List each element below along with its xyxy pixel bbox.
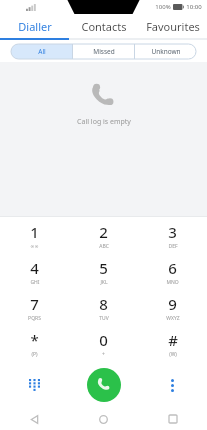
button[interactable]: Missed [73,44,134,59]
staticText: PQRS [28,315,41,322]
staticText: 0 [99,330,108,350]
button[interactable]: Keypad [0,362,69,408]
button[interactable]: 9 [138,290,207,326]
staticText: TUV [99,315,109,322]
staticText: Unknown [151,47,181,56]
staticText: 2 [99,222,108,242]
button[interactable]: Call [87,368,121,402]
button[interactable]: Home [69,408,138,430]
button[interactable]: 2 [69,217,138,254]
button[interactable]: # [138,326,207,362]
button[interactable]: * [0,326,69,362]
staticText: WXYZ [166,315,180,322]
button[interactable]: Unknown [135,44,196,59]
staticText: * [30,330,39,350]
staticText: + [102,351,105,358]
button[interactable]: 8 [69,290,138,326]
staticText: Favourites [146,19,200,34]
staticText: Contacts [81,19,127,34]
staticText: 5 [99,258,108,278]
staticText: GHI [30,279,40,286]
button[interactable]: 5 [69,254,138,290]
staticText: 6 [168,258,177,278]
button[interactable]: More options [138,362,207,408]
staticText: 1 [30,222,39,242]
staticText: 3 [168,222,177,242]
staticText: (P) [31,351,38,358]
staticText: MNO [166,279,179,286]
staticText: 9 [168,294,177,314]
staticText: DEF [168,243,178,250]
staticText: 10:00 [186,3,202,11]
staticText: 4 [30,258,39,278]
button[interactable]: 3 [138,217,207,254]
button[interactable]: 4 [0,254,69,290]
staticText: ABC [99,243,109,250]
staticText: 7 [30,294,39,314]
staticText: 8 [99,294,108,314]
button[interactable]: Contacts [69,14,138,38]
button[interactable]: Back [0,408,69,430]
button[interactable]: Recents [138,408,207,430]
button[interactable]: Dialler [0,14,69,38]
staticText: All [38,47,46,56]
staticText: Missed [93,47,115,56]
staticText: ∞∞ [30,243,39,249]
staticText: JKL [100,279,108,286]
staticText: 100% [155,3,171,11]
button[interactable]: 0 [69,326,138,362]
button[interactable]: 1 [0,217,69,254]
staticText: # [168,330,178,350]
button[interactable]: All [11,44,72,59]
staticText: Call log is empty [77,117,131,127]
button[interactable]: 7 [0,290,69,326]
button[interactable]: Favourites [138,14,207,38]
button[interactable]: 6 [138,254,207,290]
staticText: Dialler [18,19,52,34]
staticText: (W) [169,351,177,358]
